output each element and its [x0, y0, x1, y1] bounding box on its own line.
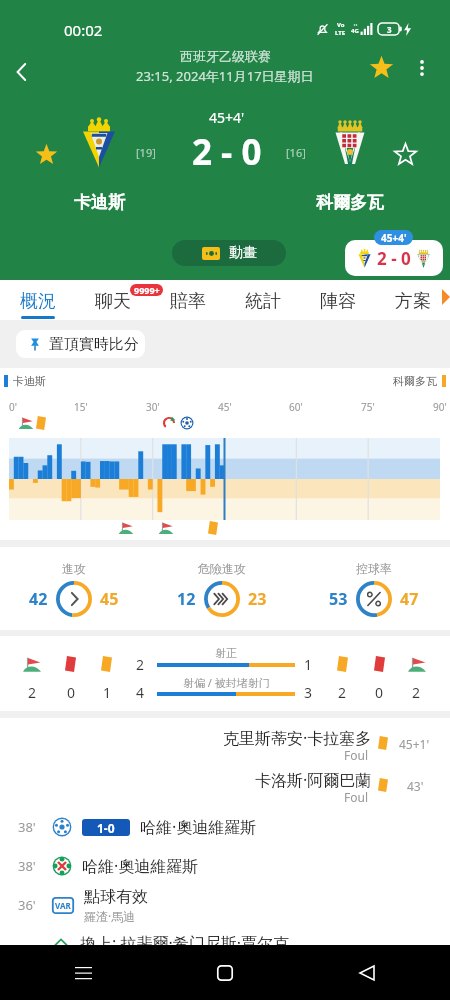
staticText: 陣容: [320, 290, 356, 313]
staticText: Foul: [344, 747, 369, 763]
staticText: 哈維·奧迪維羅斯: [140, 816, 257, 838]
staticText: 點球有效: [84, 887, 148, 907]
staticText: 換上: 拉斐爾·希门尼斯·賈尔克: [80, 932, 290, 954]
staticText: 概況: [20, 290, 56, 313]
staticText: 9999+: [134, 284, 160, 296]
staticText: 卡迪斯: [13, 374, 46, 388]
staticText: 45+1': [399, 736, 430, 752]
button[interactable]: 進攻: [14, 553, 134, 623]
staticText: 卡迪斯: [74, 192, 125, 213]
button[interactable]: Favourite home team: [30, 138, 62, 170]
staticText: 4G: [351, 27, 359, 35]
staticText: 38': [18, 818, 40, 836]
staticText: 75': [361, 400, 375, 414]
staticText: 射正: [215, 646, 237, 660]
staticText: 科爾多瓦: [393, 374, 437, 388]
staticText: 聊天: [95, 290, 131, 313]
staticText: 23:15, 2024年11月17日星期日: [136, 67, 314, 85]
button[interactable]: Favourite away team: [389, 138, 421, 170]
staticText: 4: [136, 683, 145, 702]
staticText: 2 - 0: [377, 247, 411, 270]
staticText: 90': [433, 400, 447, 414]
staticText: 36': [18, 896, 40, 914]
button[interactable]: 38': [0, 811, 450, 843]
button[interactable]: 聊天: [75, 280, 150, 320]
button[interactable]: 動畫: [172, 240, 286, 266]
staticText: 西班牙乙级联赛: [180, 48, 271, 64]
staticText: 卡洛斯·阿爾巴蘭: [255, 769, 372, 791]
staticText: 38': [18, 857, 40, 875]
button[interactable]: 統計: [225, 280, 300, 320]
button[interactable]: 概況: [0, 280, 75, 320]
staticText: 羅渣·馬迪: [84, 908, 136, 924]
button[interactable]: 38': [0, 850, 450, 882]
button[interactable]: Back: [0, 50, 44, 94]
button[interactable]: 36': [0, 883, 450, 927]
staticText: 科爾多瓦: [316, 192, 384, 213]
staticText: 置頂實時比分: [49, 335, 139, 354]
staticText: [16]: [286, 145, 306, 160]
staticText: [19]: [136, 145, 156, 160]
staticText: 2: [28, 683, 37, 702]
staticText: 2: [412, 683, 421, 702]
staticText: 47: [400, 588, 419, 610]
staticText: 12: [177, 588, 196, 610]
staticText: 賠率: [170, 290, 206, 313]
staticText: 克里斯蒂安·卡拉塞多: [223, 727, 372, 749]
staticText: 45+4': [381, 231, 407, 245]
button[interactable]: More options: [404, 50, 440, 86]
button[interactable]: Home: [202, 950, 248, 996]
staticText: 方案: [395, 290, 431, 313]
staticText: LTE: [335, 29, 346, 37]
staticText: 1-0: [97, 820, 115, 836]
staticText: Vo: [337, 21, 345, 29]
button[interactable]: 賠率: [150, 280, 225, 320]
button[interactable]: 換上: 拉斐爾·希门尼斯·賈尔克: [0, 930, 450, 956]
button[interactable]: 置頂實時比分: [16, 330, 145, 358]
staticText: 45': [218, 400, 232, 414]
staticText: 42: [29, 588, 48, 610]
staticText: 統計: [245, 290, 281, 313]
staticText: 0: [67, 683, 76, 702]
staticText: 2: [136, 655, 145, 674]
staticText: 哈維·奧迪維羅斯: [82, 855, 199, 877]
staticText: 進攻: [62, 561, 86, 576]
staticText: 控球率: [356, 561, 392, 576]
staticText: 53: [329, 588, 348, 610]
button[interactable]: 控球率: [314, 553, 434, 623]
staticText: 45: [100, 588, 119, 610]
staticText: 23: [248, 588, 267, 610]
staticText: 1: [103, 683, 112, 702]
button[interactable]: 危險進攻: [162, 553, 282, 623]
staticText: 45+4': [209, 108, 245, 127]
button[interactable]: 陣容: [300, 280, 375, 320]
button[interactable]: Favorite league: [364, 50, 398, 84]
staticText: Foul: [344, 789, 369, 805]
staticText: 00:02: [64, 20, 103, 40]
button[interactable]: Back: [344, 950, 390, 996]
staticText: 2: [338, 683, 347, 702]
staticText: 3: [387, 24, 392, 35]
staticText: 15': [74, 400, 88, 414]
button[interactable]: 2 - 0: [345, 240, 443, 276]
staticText: 43': [407, 778, 424, 794]
staticText: 射偏 / 被封堵射门: [183, 675, 270, 690]
staticText: 0: [375, 683, 384, 702]
staticText: 60': [289, 400, 303, 414]
staticText: 3: [304, 683, 313, 702]
staticText: 0': [9, 400, 17, 414]
button[interactable]: Recents: [60, 950, 106, 996]
staticText: 30': [146, 400, 160, 414]
staticText: 1: [304, 655, 313, 674]
staticText: VAR: [55, 900, 71, 911]
staticText: 危險進攻: [198, 561, 246, 576]
staticText: 動畫: [229, 244, 257, 262]
staticText: 2 - 0: [192, 128, 262, 176]
button[interactable]: 方案: [375, 280, 450, 320]
